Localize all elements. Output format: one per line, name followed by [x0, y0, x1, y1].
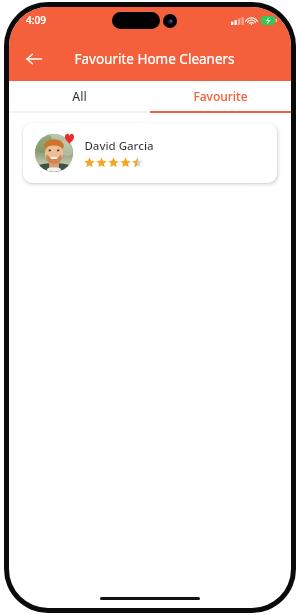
button[interactable]: All: [9, 81, 150, 111]
staticText: Favourite Home Cleaners: [74, 50, 235, 68]
staticText: All: [72, 88, 87, 104]
button[interactable]: Favourite: [150, 81, 291, 111]
button[interactable]: Back: [17, 42, 51, 76]
button[interactable]: David Garcia: [23, 123, 277, 183]
staticText: Favourite: [193, 88, 248, 104]
staticText: 4:09: [26, 13, 46, 27]
staticText: David Garcia: [84, 138, 154, 154]
